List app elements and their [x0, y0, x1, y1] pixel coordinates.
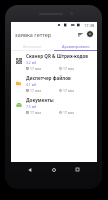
staticText: заявка геттер [15, 31, 52, 38]
staticText: 17 мая [30, 110, 42, 115]
button[interactable]: Документы [11, 95, 97, 117]
button[interactable]: Диспетчер файлов [11, 73, 97, 95]
button[interactable]: Sort [76, 30, 84, 38]
button[interactable]: Settings [86, 30, 94, 38]
staticText: 17 мая [63, 88, 75, 93]
staticText: 17 мая [30, 88, 42, 93]
staticText: 17:38 [84, 23, 95, 28]
staticText: 4.1 мб [26, 82, 37, 87]
staticText: Активные [23, 44, 42, 49]
button[interactable]: Сканер QR & Штрих-кодов [11, 51, 97, 73]
button[interactable]: Recent apps [72, 164, 83, 175]
staticText: Документы [26, 97, 54, 103]
button[interactable]: Home [48, 164, 59, 175]
staticText: 17 мая [63, 66, 75, 71]
button[interactable]: Архивировано [54, 40, 97, 50]
staticText: Диспетчер файлов [26, 75, 71, 81]
staticText: Архивировано [62, 44, 90, 49]
staticText: 17 мая [63, 110, 75, 115]
staticText: 7.5 мб [26, 104, 37, 109]
staticText: 17 мая [30, 66, 42, 71]
staticText: 3.2 мб [26, 60, 37, 65]
button[interactable]: Активные [11, 40, 54, 50]
button[interactable]: Back [24, 164, 35, 175]
staticText: Сканер QR & Штрих-кодов [26, 53, 89, 59]
